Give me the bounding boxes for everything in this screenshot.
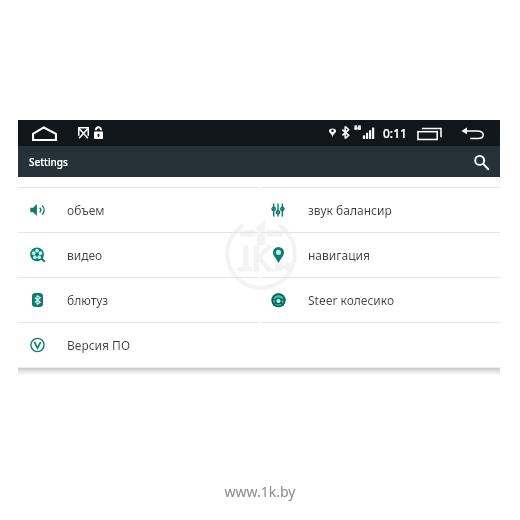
button[interactable]: объем	[18, 188, 259, 232]
button[interactable]: Steer колесико	[259, 278, 500, 322]
button[interactable]: Search	[469, 150, 493, 174]
staticText: видео	[67, 247, 103, 263]
button[interactable]: звук балансир	[259, 188, 500, 232]
staticText: 0:11	[383, 125, 407, 141]
button[interactable]: Версия ПО	[18, 323, 259, 367]
button[interactable]: видео	[18, 233, 259, 277]
staticText: объем	[67, 202, 105, 218]
button[interactable]: блютуз	[18, 278, 259, 322]
staticText: блютуз	[67, 292, 109, 308]
staticText: Settings	[29, 155, 68, 169]
staticText: звук балансир	[308, 202, 392, 218]
staticText: навигация	[308, 247, 370, 263]
staticText: www.1k.by	[0, 482, 520, 501]
button[interactable]: навигация	[259, 233, 500, 277]
staticText: Версия ПО	[67, 337, 131, 353]
staticText: Steer колесико	[308, 292, 395, 308]
